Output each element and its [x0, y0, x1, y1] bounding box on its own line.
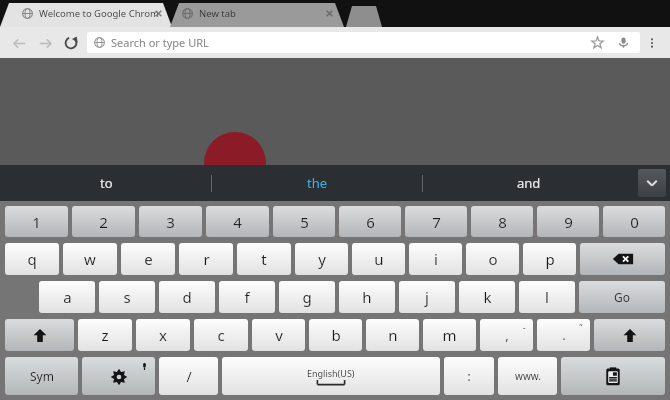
- button[interactable]: z: [78, 319, 132, 351]
- button[interactable]: 4: [206, 206, 269, 237]
- button[interactable]: a: [39, 281, 95, 313]
- staticText: New tab: [199, 7, 236, 20]
- button[interactable]: and: [423, 165, 634, 201]
- staticText: 8: [498, 212, 507, 232]
- staticText: 1: [32, 212, 41, 232]
- staticText: 6: [366, 212, 375, 232]
- button[interactable]: Go: [579, 281, 665, 313]
- staticText: /: [186, 367, 192, 386]
- button[interactable]: Close tab: [152, 7, 165, 20]
- button[interactable]: x: [136, 319, 190, 351]
- button[interactable]: i: [409, 243, 462, 275]
- button[interactable]: 5: [273, 206, 335, 237]
- staticText: q: [27, 249, 37, 269]
- staticText: w: [84, 249, 96, 269]
- button[interactable]: 9: [537, 206, 599, 237]
- staticText: 0: [630, 212, 639, 232]
- staticText: English(US): [307, 367, 355, 379]
- button[interactable]: Back: [6, 30, 32, 56]
- button[interactable]: Clipboard: [561, 357, 665, 395]
- button[interactable]: Bookmark: [586, 32, 608, 53]
- button[interactable]: Welcome to Google Chrom: [14, 0, 185, 27]
- button[interactable]: 0: [603, 206, 665, 237]
- button[interactable]: f: [219, 281, 275, 313]
- staticText: 3: [166, 212, 175, 232]
- button[interactable]: w: [63, 243, 117, 275]
- button[interactable]: c: [194, 319, 248, 351]
- staticText: c: [217, 325, 225, 345]
- staticText: 4: [233, 212, 242, 232]
- button[interactable]: 1: [5, 206, 68, 237]
- button[interactable]: to: [0, 165, 212, 201]
- staticText: h: [362, 287, 372, 307]
- staticText: b: [331, 325, 341, 345]
- staticText: 7: [432, 212, 441, 232]
- button[interactable]: e: [121, 243, 175, 275]
- button[interactable]: Space: [222, 357, 440, 395]
- button[interactable]: 6: [339, 206, 401, 237]
- button[interactable]: g: [279, 281, 335, 313]
- staticText: the: [307, 174, 328, 192]
- staticText: f: [244, 287, 250, 307]
- button[interactable]: Close tab: [323, 7, 336, 20]
- button[interactable]: Shift: [594, 319, 665, 351]
- staticText: :: [467, 367, 471, 385]
- button[interactable]: t: [237, 243, 291, 275]
- staticText: Welcome to Google Chrom: [39, 7, 159, 20]
- staticText: -: [523, 322, 526, 333]
- button[interactable]: .: [537, 319, 590, 351]
- button[interactable]: More options: [640, 27, 664, 58]
- button[interactable]: b: [309, 319, 362, 351]
- button[interactable]: 7: [405, 206, 467, 237]
- button[interactable]: www.: [498, 357, 557, 395]
- button[interactable]: 8: [471, 206, 533, 237]
- button[interactable]: ,: [480, 319, 533, 351]
- staticText: u: [374, 249, 384, 269]
- button[interactable]: 3: [139, 206, 202, 237]
- staticText: Sym: [30, 368, 54, 384]
- staticText: m: [442, 325, 457, 345]
- button[interactable]: Keyboard settings: [82, 357, 155, 395]
- button[interactable]: d: [159, 281, 215, 313]
- button[interactable]: q: [5, 243, 59, 275]
- button[interactable]: Backspace: [580, 243, 665, 275]
- button[interactable]: u: [352, 243, 405, 275]
- staticText: i: [434, 249, 438, 269]
- staticText: r: [203, 249, 210, 269]
- button[interactable]: r: [179, 243, 233, 275]
- button[interactable]: y: [295, 243, 348, 275]
- button[interactable]: v: [252, 319, 305, 351]
- button[interactable]: Voice search: [612, 32, 634, 53]
- staticText: s: [123, 287, 131, 307]
- button[interactable]: o: [466, 243, 519, 275]
- button[interactable]: l: [519, 281, 575, 313]
- button[interactable]: Shift: [5, 319, 74, 351]
- button[interactable]: s: [99, 281, 155, 313]
- button[interactable]: Reload: [58, 30, 84, 56]
- staticText: j: [425, 287, 429, 307]
- button[interactable]: n: [366, 319, 419, 351]
- button[interactable]: /: [159, 357, 218, 395]
- button[interactable]: :: [444, 357, 494, 395]
- staticText: d: [182, 287, 192, 307]
- button[interactable]: j: [399, 281, 455, 313]
- staticText: e: [144, 249, 153, 269]
- button[interactable]: 2: [72, 206, 135, 237]
- button[interactable]: New tab: [182, 0, 322, 27]
- staticText: n: [388, 325, 398, 345]
- staticText: .: [562, 326, 566, 344]
- button[interactable]: k: [459, 281, 515, 313]
- button[interactable]: the: [212, 165, 423, 201]
- button[interactable]: m: [423, 319, 476, 351]
- button[interactable]: Forward: [32, 30, 58, 56]
- button[interactable]: h: [339, 281, 395, 313]
- staticText: t: [261, 249, 267, 269]
- button[interactable]: Search or type URL: [87, 32, 640, 53]
- button[interactable]: p: [523, 243, 576, 275]
- staticText: x: [159, 325, 167, 345]
- staticText: 9: [564, 212, 573, 232]
- button[interactable]: Sym: [5, 357, 78, 395]
- button[interactable]: Expand suggestions: [638, 169, 666, 197]
- staticText: 5: [300, 212, 309, 232]
- staticText: Go: [614, 289, 630, 305]
